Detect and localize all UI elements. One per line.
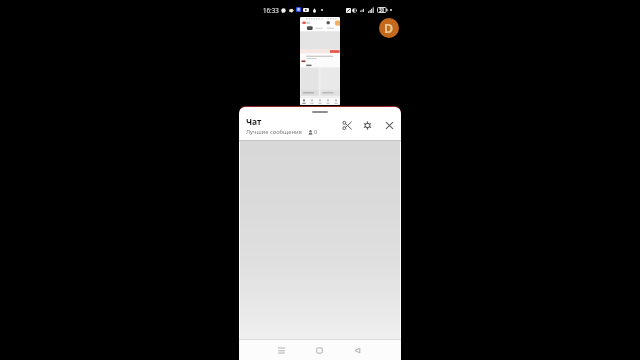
button[interactable]: Floating shortcut — [379, 18, 399, 38]
button[interactable]: App preview — [300, 17, 340, 105]
staticText: 0 — [314, 128, 318, 136]
button[interactable]: Close — [383, 119, 396, 132]
staticText: Лучшие сообщения — [246, 128, 302, 136]
staticText: 16:33 — [263, 6, 279, 14]
button[interactable]: Recent apps — [272, 340, 290, 360]
staticText: D — [384, 20, 394, 37]
button[interactable]: Cut — [341, 119, 354, 132]
button[interactable]: Back — [348, 340, 366, 360]
staticText: Чат — [246, 116, 262, 128]
staticText: 30 — [379, 7, 385, 13]
button[interactable]: Home — [310, 340, 328, 360]
button[interactable]: Settings — [361, 119, 374, 132]
